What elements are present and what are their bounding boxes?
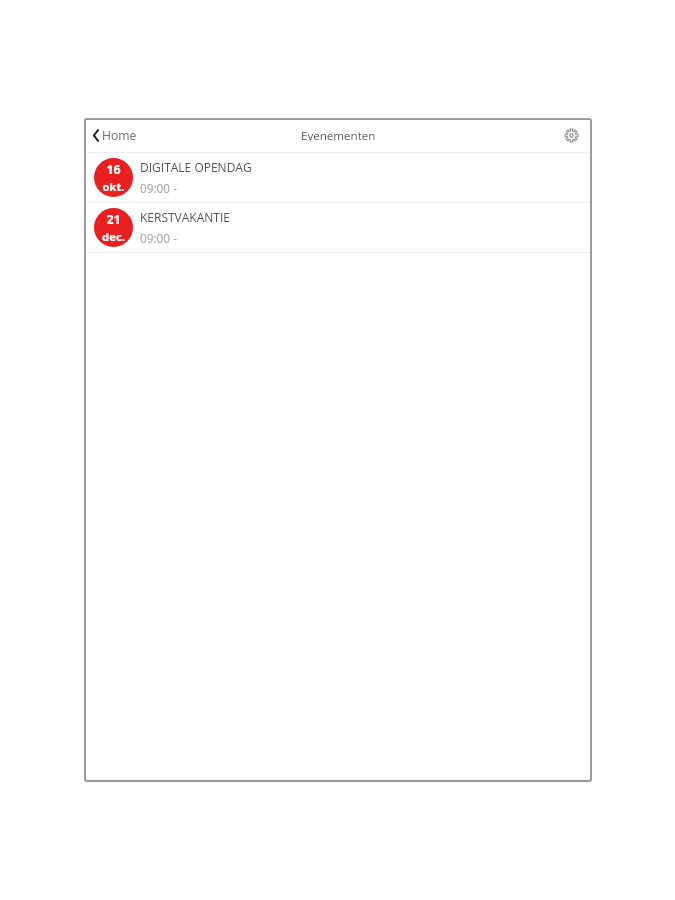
staticText: 16 — [106, 161, 121, 178]
staticText: okt. — [102, 179, 125, 194]
staticText: KERSTVAKANTIE — [140, 209, 230, 225]
button[interactable]: Settings — [557, 125, 592, 146]
button[interactable]: Home — [84, 122, 145, 149]
staticText: 09:00 - — [140, 180, 177, 196]
staticText: Home — [102, 127, 137, 144]
staticText: 21 — [106, 211, 121, 228]
staticText: 09:00 - — [140, 230, 177, 246]
staticText: Evenementen — [301, 128, 376, 144]
button[interactable]: 16 — [84, 153, 592, 202]
button[interactable]: 21 — [84, 203, 592, 252]
staticText: dec. — [102, 229, 125, 244]
staticText: DIGITALE OPENDAG — [140, 159, 252, 175]
